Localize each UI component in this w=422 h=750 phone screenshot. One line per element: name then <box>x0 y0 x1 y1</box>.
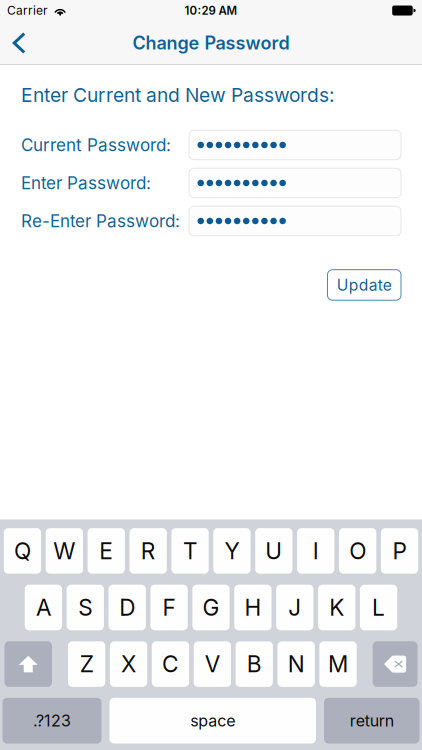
staticText: T <box>183 537 197 565</box>
staticText: Re-Enter Password: <box>21 211 180 231</box>
staticText: I <box>313 537 319 565</box>
button[interactable]: E <box>88 528 125 574</box>
button[interactable]: Update <box>327 270 401 300</box>
button[interactable]: I <box>297 528 334 574</box>
button[interactable]: T <box>171 528 209 574</box>
button[interactable]: W <box>46 528 83 574</box>
button[interactable]: S <box>67 585 104 630</box>
button[interactable]: B <box>236 641 273 687</box>
staticText: N <box>288 650 305 678</box>
button[interactable]: G <box>192 585 230 630</box>
staticText: F <box>163 594 176 621</box>
staticText: Update <box>337 275 392 294</box>
button[interactable]: X <box>110 641 147 687</box>
button[interactable]: .?123 <box>2 698 101 743</box>
button[interactable]: H <box>234 585 271 630</box>
button[interactable]: Delete <box>373 641 417 687</box>
button[interactable]: O <box>339 528 376 574</box>
staticText: M <box>328 650 348 678</box>
staticText: K <box>329 594 344 621</box>
button[interactable]: F <box>150 585 188 630</box>
staticText: V <box>205 650 220 678</box>
button[interactable]: Z <box>68 641 105 687</box>
button[interactable]: A <box>25 585 62 630</box>
staticText: C <box>162 650 179 678</box>
button[interactable]: C <box>152 641 189 687</box>
staticText: R <box>141 537 156 565</box>
staticText: Z <box>80 650 94 678</box>
staticText: Carrier <box>7 3 48 18</box>
staticText: Q <box>14 537 31 565</box>
staticText: U <box>265 537 282 565</box>
staticText: W <box>53 537 75 565</box>
button[interactable]: L <box>360 585 397 630</box>
staticText: S <box>78 594 92 621</box>
staticText: B <box>247 650 262 678</box>
button[interactable]: Y <box>213 528 251 574</box>
staticText: A <box>36 594 51 621</box>
button[interactable]: D <box>108 585 146 630</box>
staticText: .?123 <box>33 711 71 730</box>
staticText: G <box>202 594 219 621</box>
staticText: Enter Current and New Passwords: <box>21 83 335 107</box>
button[interactable]: K <box>318 585 355 630</box>
staticText: D <box>119 594 135 621</box>
staticText: X <box>121 650 136 678</box>
staticText: Enter Password: <box>21 173 151 193</box>
button[interactable]: space <box>109 698 316 743</box>
button[interactable]: J <box>276 585 313 630</box>
button[interactable]: U <box>255 528 292 574</box>
staticText: Change Password <box>132 32 289 54</box>
staticText: O <box>349 537 366 565</box>
button[interactable]: Q <box>4 528 41 574</box>
staticText: return <box>350 711 394 730</box>
staticText: L <box>372 594 385 621</box>
button[interactable]: P <box>381 528 418 574</box>
staticText: 10:29 AM <box>184 4 237 17</box>
button[interactable]: return <box>324 698 419 743</box>
staticText: H <box>244 594 261 621</box>
staticText: Y <box>224 537 239 565</box>
staticText: E <box>99 537 113 565</box>
button[interactable]: V <box>194 641 231 687</box>
button[interactable]: R <box>129 528 167 574</box>
button[interactable]: Back <box>0 21 50 65</box>
button[interactable]: N <box>277 641 315 687</box>
staticText: Current Password: <box>21 135 171 155</box>
button[interactable]: M <box>319 641 357 687</box>
staticText: space <box>190 711 235 730</box>
button[interactable]: Shift <box>4 641 52 687</box>
staticText: P <box>392 537 406 565</box>
staticText: J <box>288 594 301 621</box>
